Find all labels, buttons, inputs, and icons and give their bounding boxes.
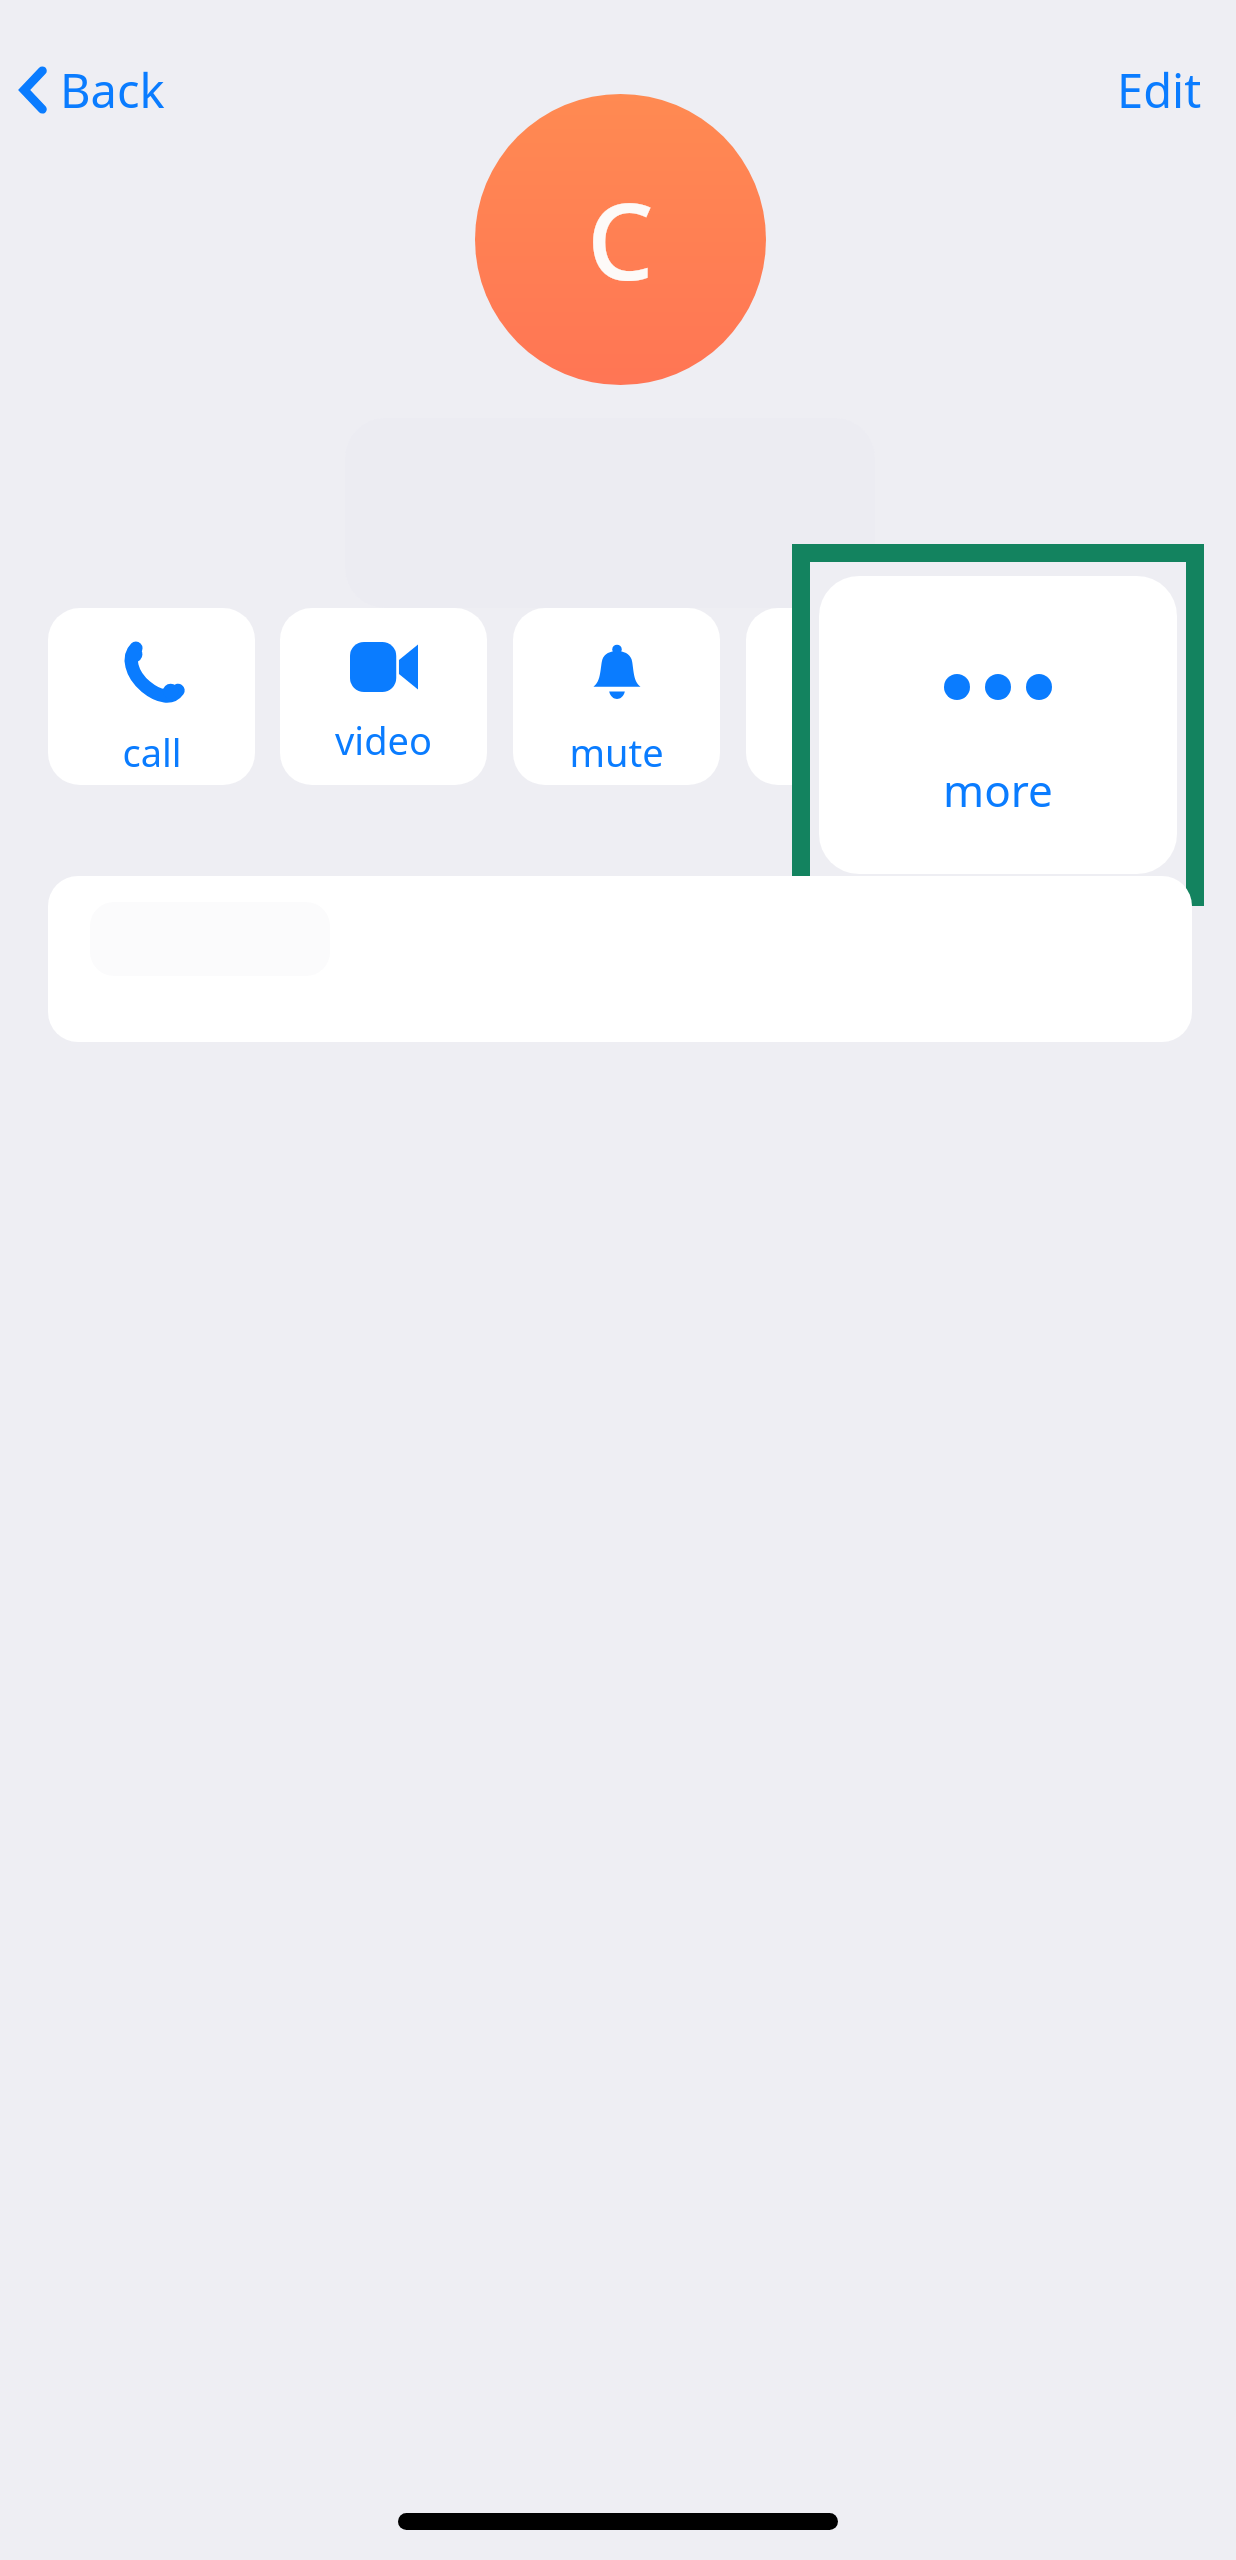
button[interactable]: Contact photo bbox=[475, 94, 766, 385]
staticText: video bbox=[335, 714, 432, 766]
button[interactable]: call bbox=[48, 608, 255, 785]
staticText: more bbox=[943, 760, 1053, 820]
button[interactable]: Back bbox=[14, 52, 171, 128]
staticText: Edit bbox=[1117, 58, 1202, 122]
button[interactable]: video bbox=[280, 608, 487, 785]
staticText: C bbox=[587, 168, 654, 311]
button[interactable]: Edit bbox=[1109, 52, 1210, 128]
staticText: call bbox=[122, 726, 182, 778]
staticText: mute bbox=[569, 726, 664, 778]
button[interactable]: more bbox=[819, 576, 1177, 874]
button[interactable]: mute bbox=[513, 608, 720, 785]
button[interactable]: Contact details bbox=[48, 876, 1192, 1042]
staticText: Back bbox=[60, 58, 165, 122]
button[interactable]: Action bbox=[746, 608, 953, 785]
